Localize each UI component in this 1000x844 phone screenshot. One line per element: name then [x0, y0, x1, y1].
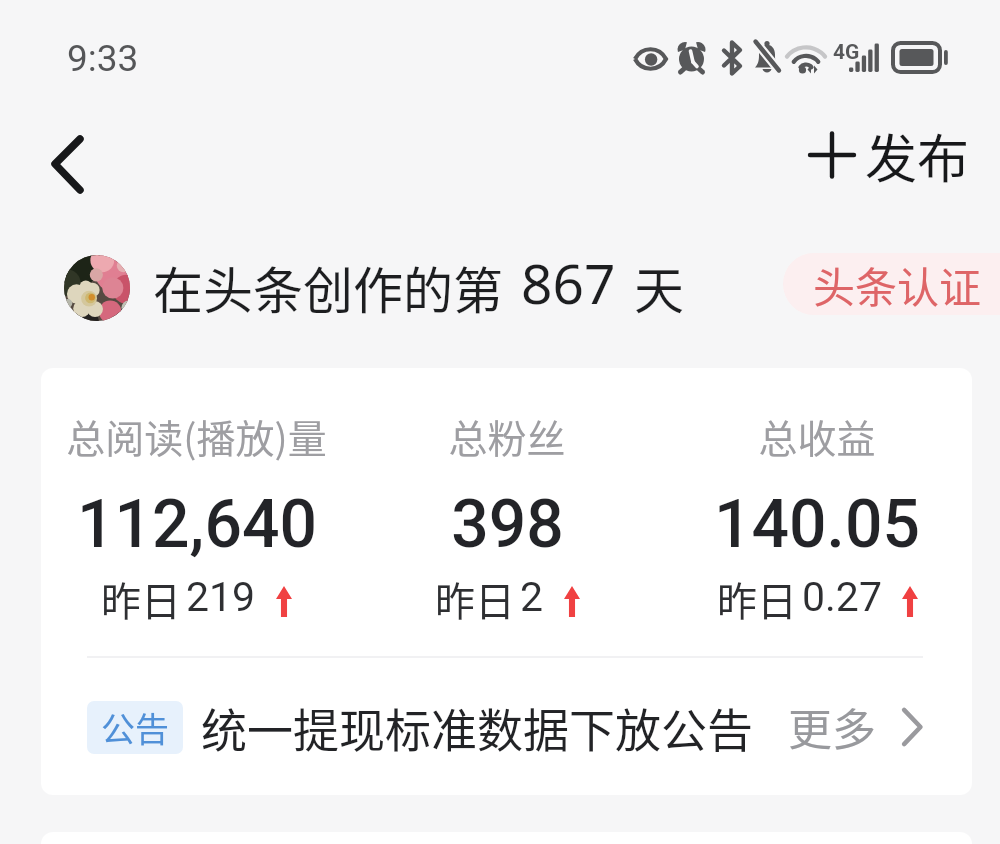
staticText: 219 [186, 573, 256, 621]
staticText: 867 [521, 245, 616, 320]
staticText: 4G [833, 40, 860, 65]
staticText: 140.05 [714, 486, 920, 563]
staticText: 发布 [865, 118, 970, 193]
button[interactable]: Back [22, 112, 110, 200]
staticText: 总收益 [758, 408, 876, 464]
staticText: 昨日 [435, 570, 515, 628]
staticText: 112,640 [77, 486, 317, 563]
button[interactable]: 公告 [41, 659, 972, 795]
staticText: 公告 [101, 703, 169, 752]
button[interactable]: 发布 [786, 112, 1000, 202]
staticText: 0.27 [802, 573, 882, 621]
staticText: 头条认证 [813, 254, 982, 315]
staticText: 398 [451, 486, 564, 563]
staticText: 昨日 [101, 570, 181, 628]
staticText: 天 [634, 251, 684, 323]
staticText: 总阅读(播放)量 [66, 408, 327, 464]
staticText: 统一提现标准数据下放公告 [201, 694, 753, 761]
staticText: 9:33 [67, 37, 139, 80]
staticText: 昨日 [717, 570, 797, 628]
staticText: 在头条创作的第 [153, 251, 503, 323]
button[interactable]: 头条认证 [783, 253, 1000, 315]
staticText: 2 [520, 573, 544, 621]
staticText: 总粉丝 [448, 408, 566, 464]
staticText: 更多 [788, 695, 876, 759]
